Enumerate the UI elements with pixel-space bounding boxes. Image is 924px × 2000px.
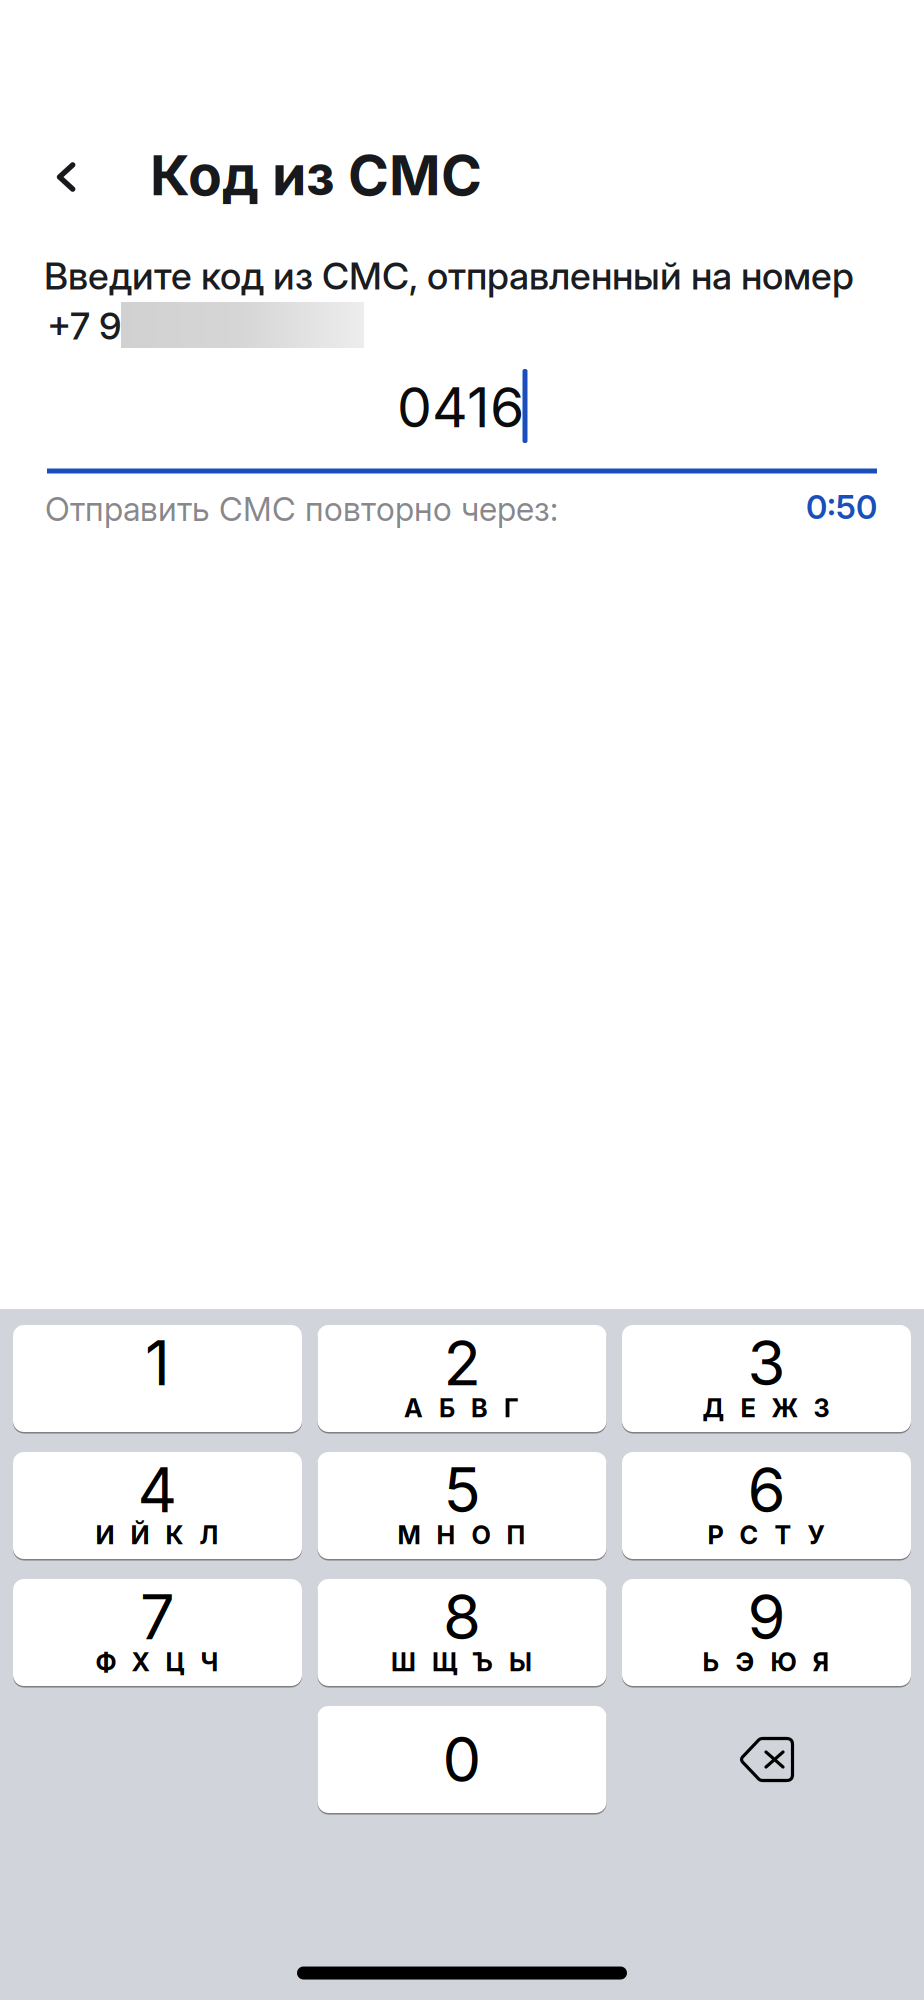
button[interactable]: 8 bbox=[317, 1579, 606, 1686]
staticText: АБВГ bbox=[404, 1393, 519, 1423]
staticText: ФХЦЧ bbox=[95, 1647, 218, 1677]
button[interactable]: 6 bbox=[622, 1452, 911, 1559]
staticText: РСТУ bbox=[707, 1520, 824, 1550]
staticText: 9 bbox=[747, 1580, 785, 1654]
staticText: МНОП bbox=[397, 1520, 525, 1550]
staticText: 0:50 bbox=[806, 487, 877, 527]
staticText: 0416 bbox=[397, 373, 524, 440]
button[interactable]: 4 bbox=[13, 1452, 302, 1559]
button[interactable]: 3 bbox=[622, 1325, 911, 1432]
staticText: Введите код из СМС, отправленный на номе… bbox=[44, 253, 854, 299]
button[interactable]: Назад bbox=[28, 140, 104, 214]
button[interactable]: 0 bbox=[317, 1706, 606, 1813]
staticText: Отправить СМС повторно через: bbox=[45, 489, 558, 529]
staticText: 0 bbox=[442, 1722, 481, 1797]
button[interactable]: 9 bbox=[622, 1579, 911, 1686]
staticText: ЬЭЮЯ bbox=[702, 1647, 829, 1677]
staticText: ИЙКЛ bbox=[95, 1520, 218, 1550]
staticText: 3 bbox=[747, 1326, 785, 1400]
button[interactable]: 1 bbox=[13, 1325, 302, 1432]
staticText: Код из СМС bbox=[150, 141, 482, 208]
staticText: 1 bbox=[145, 1326, 170, 1400]
button[interactable]: Удалить bbox=[622, 1706, 911, 1813]
staticText: 4 bbox=[137, 1453, 177, 1527]
button[interactable]: 2 bbox=[317, 1325, 606, 1432]
staticText: 5 bbox=[443, 1453, 480, 1527]
staticText: 7 bbox=[140, 1580, 175, 1654]
staticText: 8 bbox=[443, 1580, 481, 1654]
staticText: ШЩЪЫ bbox=[391, 1647, 532, 1677]
staticText: 6 bbox=[747, 1453, 785, 1527]
staticText: +7 92 bbox=[47, 303, 144, 349]
button[interactable]: 5 bbox=[317, 1452, 606, 1559]
staticText: ДЕЖЗ bbox=[702, 1393, 829, 1423]
button[interactable]: 7 bbox=[13, 1579, 302, 1686]
staticText: 2 bbox=[443, 1326, 480, 1400]
